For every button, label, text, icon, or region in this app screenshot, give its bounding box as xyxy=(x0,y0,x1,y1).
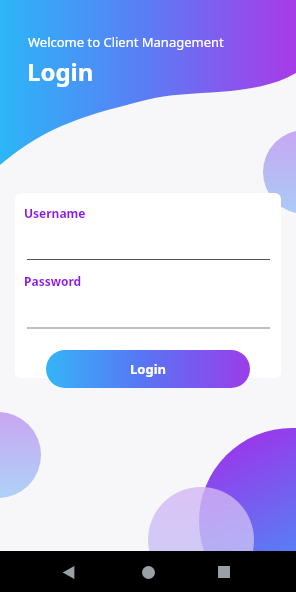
button[interactable]: Home xyxy=(135,559,161,585)
staticText: Login xyxy=(27,55,94,88)
button[interactable] xyxy=(27,223,270,260)
staticText: Username xyxy=(24,205,86,221)
staticText: Welcome to Client Management xyxy=(28,33,224,51)
button[interactable]: Login xyxy=(46,350,250,388)
staticText: Login xyxy=(130,360,166,378)
staticText: Password xyxy=(24,273,82,289)
button[interactable]: Recent apps xyxy=(211,559,237,585)
button[interactable]: Back xyxy=(55,559,81,585)
